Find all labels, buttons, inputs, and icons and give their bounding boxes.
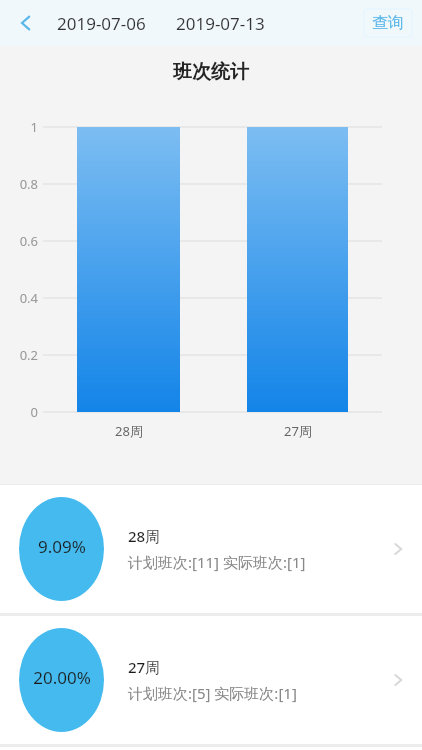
staticText: 2019-07-13 (176, 12, 265, 35)
staticText: 27周 (284, 422, 312, 440)
button[interactable]: 20.00% (0, 616, 422, 744)
staticText: 计划班次:[5] 实际班次:[1] (128, 683, 297, 703)
staticText: 0.8 (19, 175, 38, 193)
staticText: 0.4 (19, 289, 38, 307)
staticText: 计划班次:[11] 实际班次:[1] (128, 552, 306, 572)
button[interactable]: 2019-07-13 (174, 8, 267, 39)
staticText: 0 (30, 403, 38, 421)
staticText: 28周 (115, 422, 143, 440)
staticText: 9.09% (38, 535, 86, 558)
staticText: 1 (30, 118, 38, 136)
staticText: 27周 (128, 657, 161, 677)
staticText: 20.00% (33, 666, 91, 689)
staticText: 班次统计 (173, 60, 249, 84)
staticText: 2019-07-06 (57, 12, 146, 35)
button[interactable]: 2019-07-06 (55, 8, 148, 39)
staticText: 0.6 (19, 232, 38, 250)
button[interactable]: 查询 (363, 8, 413, 38)
staticText: 28周 (128, 526, 161, 546)
button[interactable]: 9.09% (0, 485, 422, 613)
staticText: 查询 (372, 13, 404, 33)
staticText: 0.2 (19, 346, 38, 364)
button[interactable]: Back (6, 3, 46, 43)
